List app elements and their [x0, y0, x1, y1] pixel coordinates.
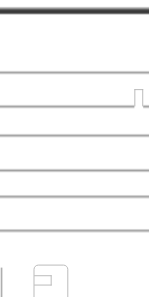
button[interactable] — [0, 14, 149, 73]
button[interactable]: Open card — [34, 265, 68, 297]
button[interactable] — [0, 197, 149, 231]
button[interactable] — [0, 171, 149, 197]
button[interactable] — [0, 107, 149, 136]
button[interactable] — [0, 73, 149, 107]
button[interactable] — [0, 136, 149, 171]
button[interactable] — [0, 0, 149, 14]
